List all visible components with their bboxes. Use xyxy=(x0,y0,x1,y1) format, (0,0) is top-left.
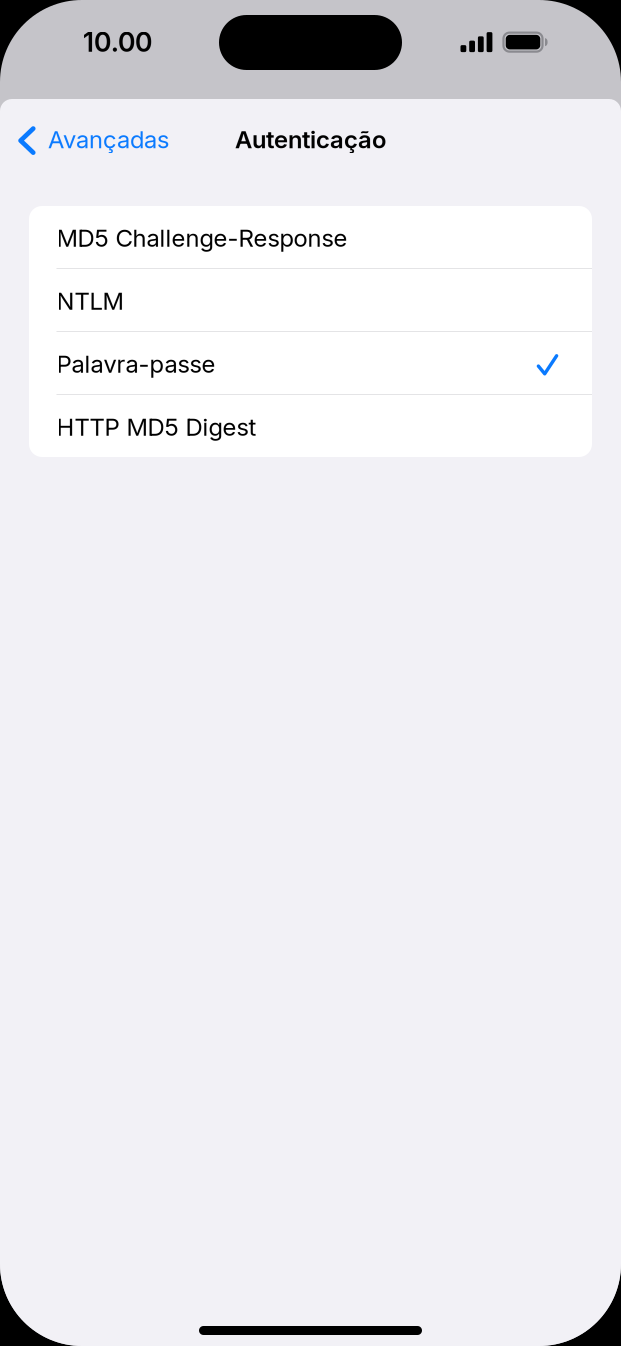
staticText: Palavra-passe xyxy=(56,349,215,378)
button[interactable]: Palavra-passe xyxy=(29,332,592,394)
button[interactable]: HTTP MD5 Digest xyxy=(29,395,592,457)
staticText: MD5 Challenge-Response xyxy=(56,223,347,252)
button[interactable]: NTLM xyxy=(29,269,592,331)
button[interactable]: Avançadas xyxy=(0,115,169,166)
staticText: Avançadas xyxy=(48,125,169,154)
staticText: HTTP MD5 Digest xyxy=(56,412,256,441)
staticText: Autenticação xyxy=(235,125,386,154)
staticText: NTLM xyxy=(56,286,123,315)
button[interactable]: MD5 Challenge-Response xyxy=(29,206,592,268)
staticText: 10.00 xyxy=(83,26,152,58)
